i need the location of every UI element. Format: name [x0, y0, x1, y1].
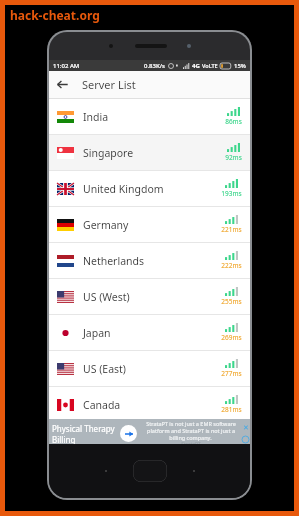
staticText: Physical Therapy	[52, 423, 115, 434]
button[interactable]: India	[49, 99, 250, 134]
button[interactable]: Netherlands	[49, 243, 250, 278]
staticText: 15%	[234, 62, 246, 70]
button[interactable]: Japan	[49, 315, 250, 350]
staticText: 255ms	[221, 297, 242, 306]
button[interactable]: Home	[133, 460, 167, 482]
staticText: Netherlands	[83, 254, 145, 268]
staticText: 269ms	[221, 333, 242, 342]
staticText: India	[83, 110, 109, 124]
staticText: 221ms	[221, 225, 242, 234]
staticText: Japan	[83, 326, 111, 340]
staticText: Billing	[52, 434, 76, 445]
button[interactable]: Canada	[49, 387, 250, 422]
button[interactable]: US (West)	[49, 279, 250, 314]
staticText: 277ms	[221, 369, 242, 378]
staticText: StrataPT is not just a EMR software	[146, 420, 236, 427]
staticText: US (East)	[83, 362, 127, 376]
button[interactable]: Singapore	[49, 135, 250, 170]
staticText: 92ms	[225, 153, 242, 162]
button[interactable]: US (East)	[49, 351, 250, 386]
staticText: 222ms	[221, 261, 242, 270]
staticText: Server List	[82, 77, 136, 92]
button[interactable]: United Kingdom	[49, 171, 250, 206]
staticText: billing company.	[169, 434, 212, 441]
staticText: 193ms	[221, 189, 242, 198]
staticText: United Kingdom	[83, 182, 164, 196]
staticText: 11:02 AM	[53, 62, 80, 70]
staticText: platform and StrataPT is not just a	[147, 427, 235, 434]
staticText: Canada	[83, 398, 121, 412]
staticText: Singapore	[83, 146, 134, 160]
staticText: ✕	[243, 424, 249, 432]
button[interactable]: Germany	[49, 207, 250, 242]
staticText: StrataPT	[181, 441, 201, 448]
button[interactable]: Back	[49, 71, 76, 98]
staticText: Germany	[83, 218, 129, 232]
staticText: 281ms	[221, 405, 242, 414]
staticText: 0.83K/s	[144, 62, 165, 70]
staticText: 86ms	[225, 117, 242, 126]
staticText: US (West)	[83, 290, 130, 304]
button[interactable]: Advertisement	[49, 419, 250, 448]
staticText: VoLTE	[202, 62, 218, 69]
staticText: hack-cheat.org	[10, 7, 100, 23]
staticText: 4G	[192, 62, 200, 70]
